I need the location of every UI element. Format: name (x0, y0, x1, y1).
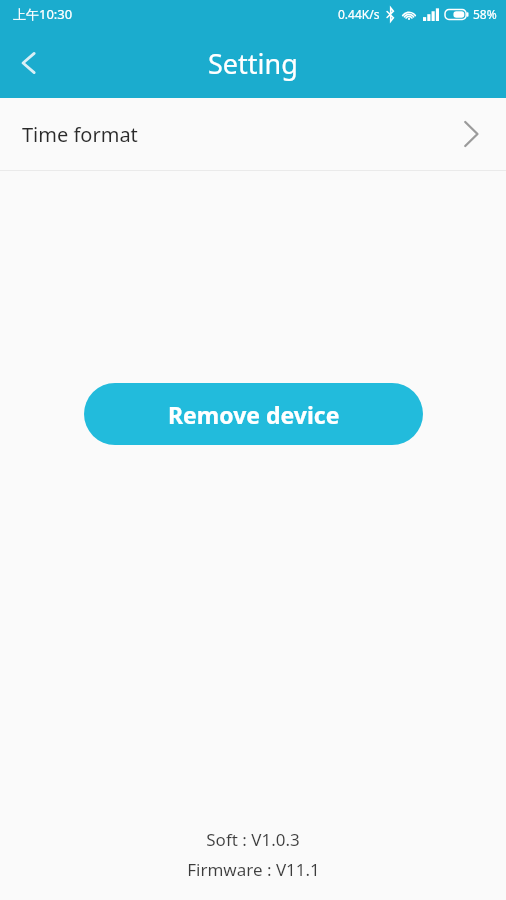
button[interactable]: Time format (0, 98, 506, 170)
staticText: Setting (208, 45, 298, 82)
staticText: Time format (22, 121, 138, 148)
staticText: 上午10:30 (13, 5, 73, 23)
staticText: Remove device (168, 399, 340, 430)
button[interactable]: Back (0, 34, 58, 92)
staticText: Firmware : V11.1 (187, 858, 320, 881)
staticText: 58% (473, 6, 497, 22)
staticText: Soft : V1.0.3 (206, 828, 300, 851)
button[interactable]: Remove device (84, 383, 423, 445)
staticText: 0.44K/s (338, 6, 380, 22)
